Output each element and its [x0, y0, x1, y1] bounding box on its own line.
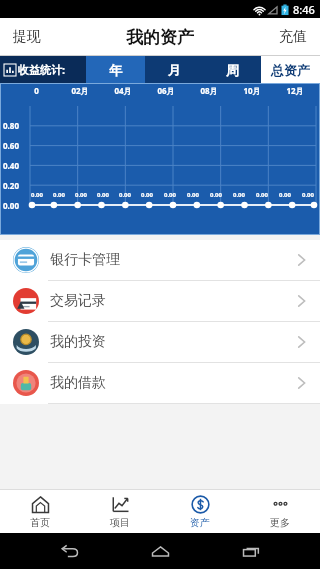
staticText: 0.00	[233, 191, 245, 199]
staticText: 更多	[270, 516, 290, 529]
button[interactable]: 交易记录	[0, 281, 320, 321]
button[interactable]: Recents	[230, 533, 272, 569]
staticText: 0.00	[141, 191, 153, 199]
button[interactable]: Home	[139, 533, 181, 569]
button[interactable]: 我的借款	[0, 363, 320, 403]
button[interactable]: 年	[86, 56, 145, 83]
staticText: 0.00	[119, 191, 131, 199]
staticText: 0.00	[164, 191, 176, 199]
button[interactable]: 月	[145, 56, 203, 83]
staticText: 12月	[286, 85, 304, 96]
staticText: 交易记录	[50, 292, 106, 310]
button[interactable]: 周	[203, 56, 261, 83]
button[interactable]: 银行卡管理	[0, 240, 320, 280]
button[interactable]: 更多	[240, 490, 320, 533]
staticText: 0.00	[31, 191, 43, 199]
staticText: 0.00	[3, 200, 19, 211]
staticText: 周	[226, 62, 239, 78]
staticText: 0.00	[302, 191, 314, 199]
button[interactable]: 总资产	[261, 56, 320, 83]
staticText: 0.00	[187, 191, 199, 199]
staticText: 08月	[200, 85, 218, 96]
staticText: 02月	[71, 85, 89, 96]
staticText: 0.00	[97, 191, 109, 199]
staticText: 总资产	[271, 62, 310, 78]
staticText: 年	[109, 62, 122, 78]
staticText: 0.00	[75, 191, 87, 199]
button[interactable]: 项目	[80, 490, 160, 533]
staticText: 0.80	[3, 120, 19, 131]
staticText: 0.00	[256, 191, 268, 199]
staticText: 8:46	[293, 2, 315, 17]
button[interactable]: Back	[49, 533, 91, 569]
button[interactable]: 提现	[0, 18, 54, 56]
staticText: 我的投资	[50, 333, 106, 351]
staticText: 项目	[110, 516, 130, 529]
staticText: 我的借款	[50, 374, 106, 392]
staticText: 我的资产	[126, 27, 194, 48]
staticText: 0.00	[53, 191, 65, 199]
staticText: 资产	[190, 516, 210, 529]
staticText: 0	[34, 85, 39, 96]
button[interactable]: 首页	[0, 490, 80, 533]
staticText: 月	[168, 62, 181, 78]
button[interactable]: 充值	[266, 18, 320, 56]
staticText: 06月	[157, 85, 175, 96]
staticText: 提现	[13, 28, 41, 46]
staticText: 0.20	[3, 180, 19, 191]
staticText: 银行卡管理	[50, 251, 120, 269]
button[interactable]: 资产	[160, 490, 240, 533]
staticText: 充值	[279, 28, 307, 46]
staticText: 0.00	[210, 191, 222, 199]
staticText: 04月	[114, 85, 132, 96]
staticText: 首页	[30, 516, 50, 529]
staticText: 10月	[243, 85, 261, 96]
button[interactable]: 我的投资	[0, 322, 320, 362]
staticText: 0.60	[3, 140, 19, 151]
staticText: 0.00	[279, 191, 291, 199]
staticText: 0.40	[3, 160, 19, 171]
staticText: 收益统计:	[18, 62, 66, 77]
